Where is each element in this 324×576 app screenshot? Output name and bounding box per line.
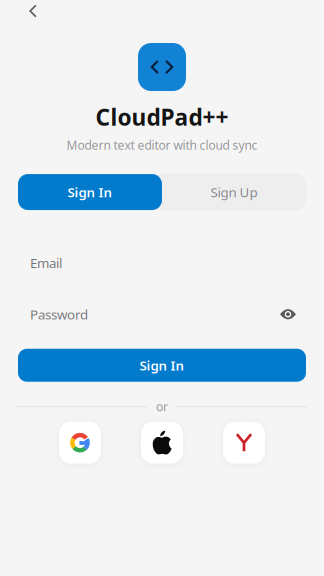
button[interactable]: Sign in with Google [59, 422, 101, 464]
staticText: CloudPad++ [95, 102, 228, 132]
button[interactable]: Show password [277, 305, 299, 324]
staticText: Modern text editor with cloud sync [66, 137, 257, 153]
button[interactable]: Sign in with Yandex [223, 422, 265, 464]
button[interactable]: Sign In [18, 174, 162, 210]
button[interactable]: Sign In [18, 349, 306, 382]
staticText: or [156, 399, 168, 415]
button[interactable]: Sign in with Apple [141, 422, 183, 464]
staticText: Sign In [67, 183, 112, 201]
staticText: Password [30, 305, 88, 323]
button[interactable]: Back [20, 0, 46, 22]
staticText: Sign Up [210, 183, 257, 201]
staticText: Email [30, 254, 62, 272]
button[interactable]: Sign Up [162, 174, 306, 210]
staticText: Sign In [139, 356, 184, 374]
